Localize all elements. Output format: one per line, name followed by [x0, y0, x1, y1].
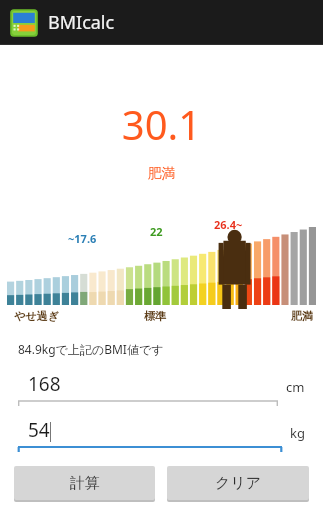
staticText: 26.4~ [214, 217, 243, 232]
staticText: 22 [150, 224, 163, 239]
staticText: 計算 [70, 474, 100, 493]
staticText: 標準 [144, 309, 166, 323]
staticText: ~17.6 [68, 231, 97, 246]
staticText: 168 [28, 371, 61, 397]
staticText: 肥満 [0, 165, 323, 183]
button[interactable]: クリア [167, 466, 309, 500]
staticText: 54 [28, 417, 50, 443]
button[interactable]: 54 [18, 417, 305, 453]
staticText: kg [290, 424, 305, 442]
staticText: クリア [215, 474, 262, 493]
staticText: 84.9kgで上記のBMI値です [18, 341, 164, 357]
staticText: cm [286, 378, 305, 396]
button[interactable]: 168 [18, 371, 305, 407]
staticText: 肥満 [291, 309, 313, 323]
button[interactable]: 計算 [14, 466, 155, 500]
staticText: BMIcalc [48, 10, 115, 35]
staticText: やせ過ぎ [14, 309, 59, 323]
staticText: 30.1 [0, 97, 323, 151]
